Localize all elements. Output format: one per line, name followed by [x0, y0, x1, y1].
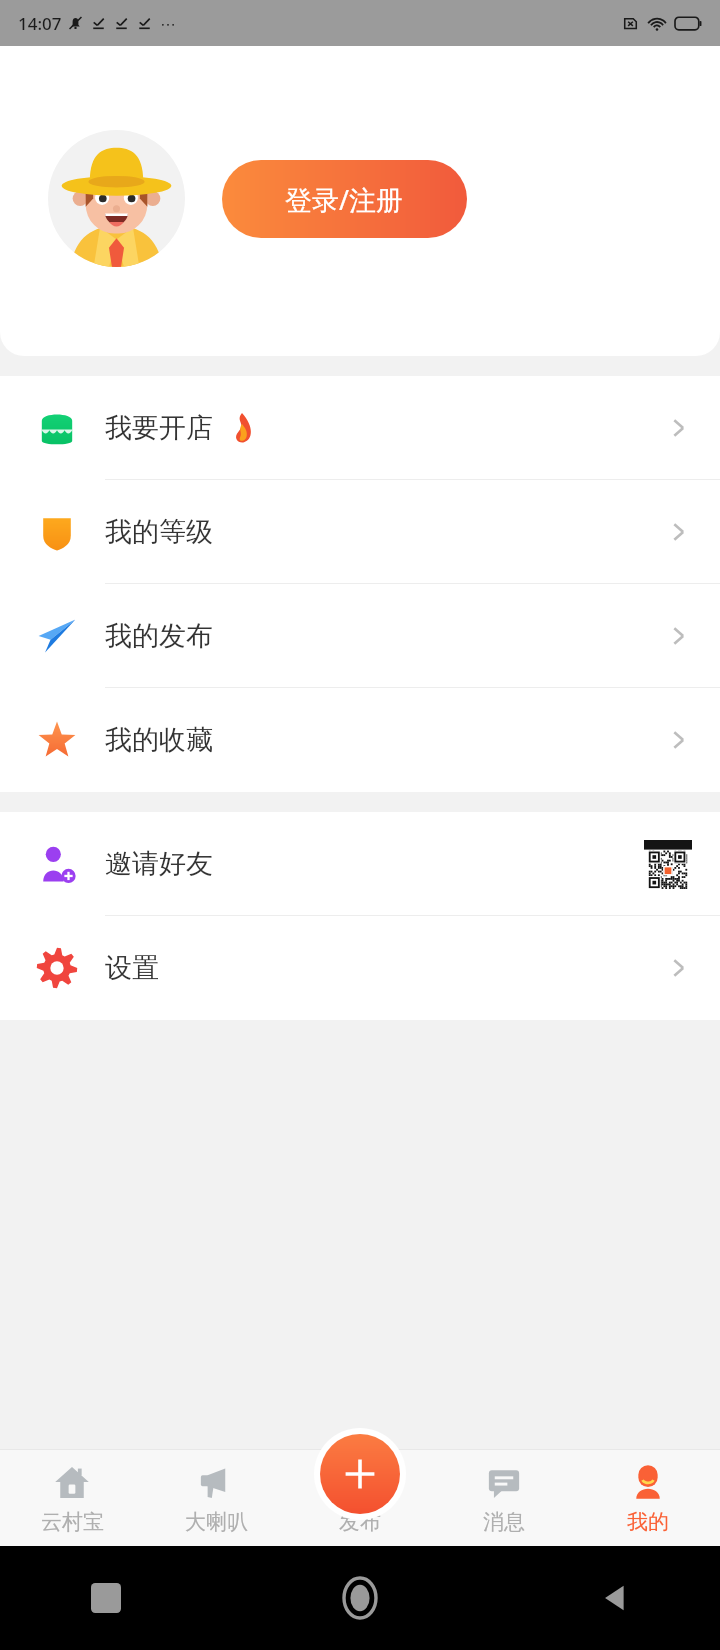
- staticText: 登录/注册: [285, 181, 404, 218]
- staticText: 我的: [627, 1509, 669, 1535]
- staticText: 我的等级: [105, 515, 213, 549]
- button[interactable]: 云村宝: [0, 1450, 144, 1546]
- staticText: 我的发布: [105, 619, 213, 653]
- button[interactable]: Avatar: [48, 130, 185, 267]
- staticText: 云村宝: [41, 1509, 104, 1535]
- button[interactable]: 我的发布: [0, 584, 720, 688]
- staticText: 发布: [339, 1509, 381, 1535]
- button[interactable]: 发布: [320, 1434, 400, 1514]
- button[interactable]: Back: [588, 1572, 640, 1624]
- button[interactable]: 消息: [432, 1450, 576, 1546]
- button[interactable]: 设置: [0, 916, 720, 1020]
- button[interactable]: 我的等级: [0, 480, 720, 584]
- button[interactable]: Recents: [80, 1572, 132, 1624]
- staticText: 我要开店: [105, 411, 213, 445]
- button[interactable]: 大喇叭: [144, 1450, 288, 1546]
- button[interactable]: 我的收藏: [0, 688, 720, 792]
- staticText: 设置: [105, 951, 159, 985]
- button[interactable]: 发布: [288, 1450, 432, 1546]
- button[interactable]: 邀请好友: [0, 812, 720, 916]
- button[interactable]: 我的: [576, 1450, 720, 1546]
- staticText: 邀请好友: [105, 847, 213, 881]
- button[interactable]: 我要开店: [0, 376, 720, 480]
- button[interactable]: Home: [334, 1572, 386, 1624]
- staticText: 消息: [483, 1509, 525, 1535]
- staticText: 14:07: [18, 12, 62, 35]
- staticText: 大喇叭: [185, 1509, 248, 1535]
- staticText: 我的收藏: [105, 723, 213, 757]
- button[interactable]: 登录/注册: [222, 160, 467, 238]
